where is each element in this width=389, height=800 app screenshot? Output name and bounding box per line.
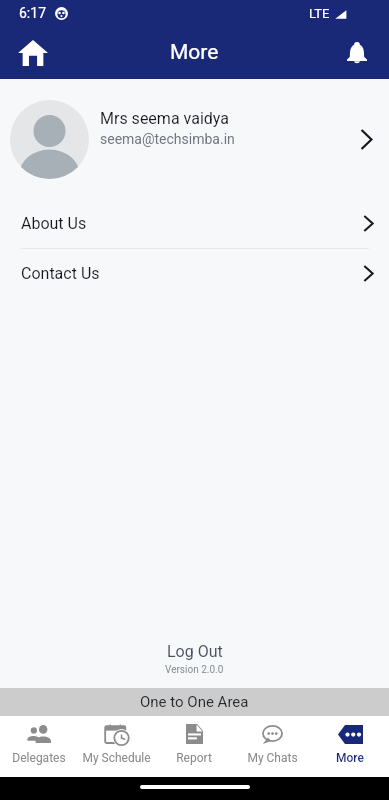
button[interactable]: My Chats (233, 716, 311, 777)
staticText: 6:17 (19, 5, 46, 21)
button[interactable]: Mrs seema vaidya (0, 79, 389, 199)
staticText: Version 2.0.0 (165, 664, 224, 676)
staticText: About Us (21, 214, 87, 233)
button[interactable]: About Us (0, 199, 389, 248)
button[interactable]: Log Out (0, 642, 389, 676)
button[interactable]: Contact Us (0, 249, 389, 298)
staticText: Delegates (12, 751, 66, 765)
staticText: More (336, 751, 364, 765)
button[interactable]: Delegates (0, 716, 77, 777)
staticText: seema@techsimba.in (100, 131, 235, 147)
staticText: One to One Area (140, 693, 249, 711)
button[interactable]: Notifications (332, 28, 381, 77)
staticText: Log Out (167, 642, 223, 661)
staticText: My Chats (247, 751, 298, 765)
staticText: LTE (309, 6, 330, 21)
staticText: Mrs seema vaidya (100, 109, 229, 128)
button[interactable]: More (311, 716, 389, 777)
staticText: Contact Us (21, 264, 100, 283)
button[interactable]: Home (8, 28, 57, 77)
staticText: Report (176, 751, 212, 765)
staticText: My Schedule (82, 751, 151, 765)
button[interactable]: Report (155, 716, 233, 777)
staticText: More (170, 40, 219, 65)
button[interactable]: My Schedule (77, 716, 155, 777)
